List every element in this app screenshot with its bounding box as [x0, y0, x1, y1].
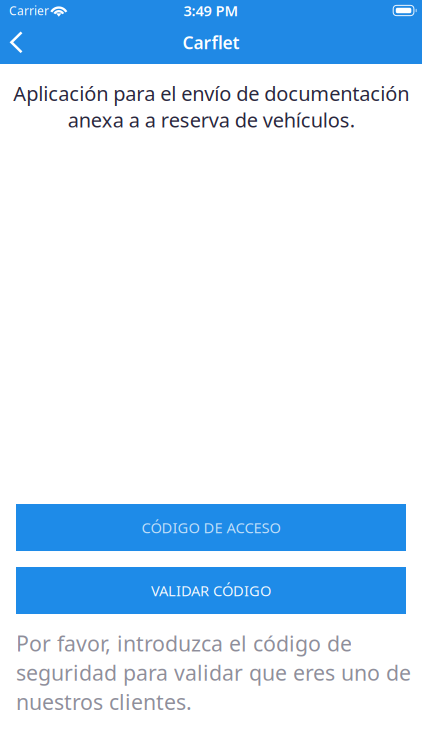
staticText: CÓDIGO DE ACCESO	[141, 518, 280, 537]
staticText: Aplicación para el envío de documentació…	[13, 80, 409, 133]
button[interactable]: Back	[0, 21, 36, 64]
button[interactable]: Validar código	[16, 567, 406, 614]
staticText: Carrier	[9, 2, 49, 18]
staticText: Por favor, introduzca el código de segur…	[16, 629, 411, 716]
button[interactable]: Código de acceso	[16, 504, 406, 551]
staticText: Carflet	[182, 31, 239, 54]
staticText: 3:49 PM	[183, 1, 238, 20]
staticText: VALIDAR CÓDIGO	[151, 581, 271, 600]
